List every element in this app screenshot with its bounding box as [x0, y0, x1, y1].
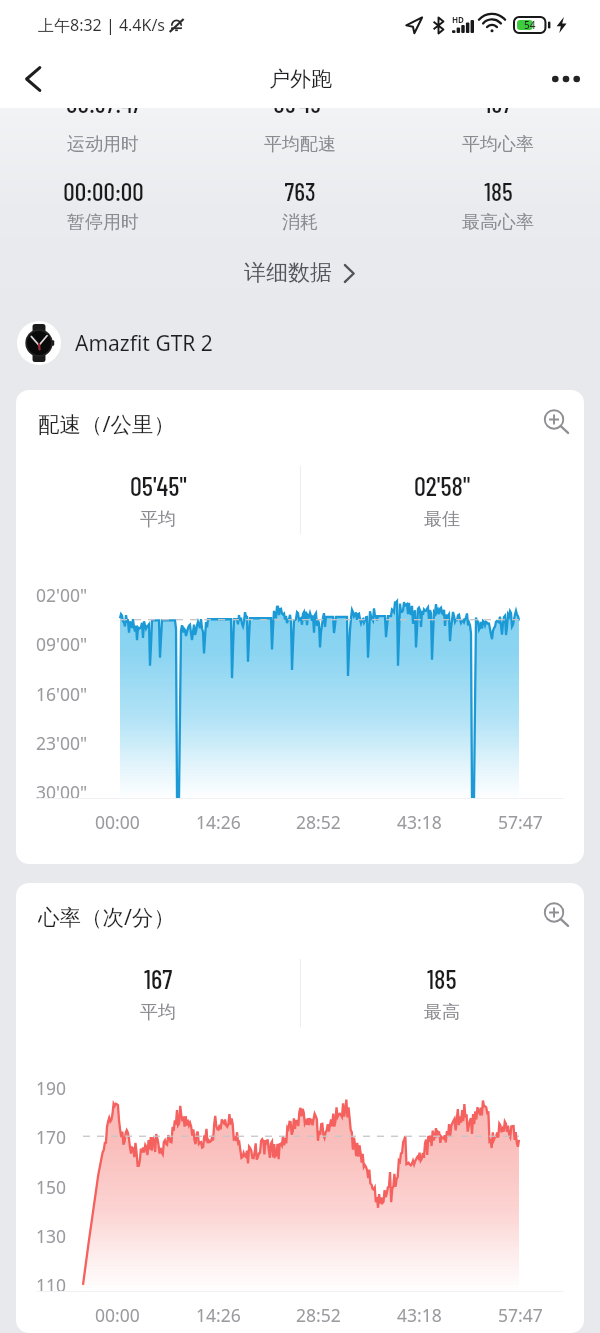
- staticText: 02'58": [414, 469, 471, 501]
- staticText: 详细数据: [244, 259, 332, 287]
- staticText: 57:47: [498, 1303, 543, 1327]
- staticText: 150: [36, 1175, 67, 1199]
- staticText: 43:18: [397, 1303, 442, 1327]
- staticText: 运动用时: [67, 133, 139, 156]
- button[interactable]: 详细数据: [224, 253, 376, 293]
- staticText: 上午8:32 | 4.4K/s: [38, 14, 165, 36]
- staticText: 167: [484, 108, 512, 118]
- staticText: 00:00:00: [63, 175, 144, 206]
- staticText: 平均配速: [264, 133, 336, 156]
- staticText: 00:37:47: [66, 108, 141, 118]
- staticText: 23'00": [36, 731, 88, 755]
- button[interactable]: Back: [8, 54, 58, 104]
- staticText: 28:52: [296, 810, 341, 834]
- staticText: 185: [427, 962, 457, 994]
- staticText: 54: [524, 18, 536, 32]
- staticText: 16'00": [36, 682, 88, 706]
- staticText: 170: [36, 1125, 67, 1149]
- staticText: 平均: [140, 508, 176, 531]
- button[interactable]: Zoom in: [536, 402, 576, 442]
- staticText: HD: [452, 14, 464, 25]
- staticText: 14:26: [196, 1303, 241, 1327]
- staticText: 平均心率: [462, 133, 534, 156]
- staticText: 05'45": [130, 469, 187, 501]
- staticText: Amazfit GTR 2: [75, 329, 213, 358]
- staticText: 43:18: [397, 810, 442, 834]
- button[interactable]: More options: [540, 53, 592, 105]
- staticText: 14:26: [196, 810, 241, 834]
- button[interactable]: Zoom in: [536, 895, 576, 935]
- staticText: 05'45": [273, 108, 328, 118]
- staticText: 00:00: [95, 1303, 140, 1327]
- staticText: 57:47: [498, 810, 543, 834]
- staticText: 最高心率: [462, 211, 534, 234]
- staticText: 28:52: [296, 1303, 341, 1327]
- staticText: 130: [36, 1224, 67, 1248]
- staticText: 00:00: [95, 810, 140, 834]
- staticText: 09'00": [36, 632, 88, 656]
- staticText: 167: [144, 962, 173, 994]
- staticText: 消耗: [282, 211, 318, 234]
- staticText: 心率（次/分）: [38, 902, 175, 931]
- staticText: 最高: [424, 1001, 460, 1024]
- staticText: 配速（/公里）: [38, 409, 175, 438]
- staticText: 110: [36, 1273, 67, 1297]
- staticText: 02'00": [36, 583, 88, 607]
- staticText: 763: [284, 175, 316, 206]
- staticText: 暂停用时: [67, 211, 139, 234]
- staticText: 平均: [140, 1001, 176, 1024]
- staticText: 185: [484, 175, 513, 206]
- button[interactable]: Amazfit GTR 2: [0, 314, 600, 372]
- staticText: 最佳: [424, 508, 460, 531]
- staticText: 190: [36, 1076, 67, 1100]
- staticText: 户外跑: [269, 66, 332, 92]
- staticText: 30'00": [36, 780, 88, 804]
